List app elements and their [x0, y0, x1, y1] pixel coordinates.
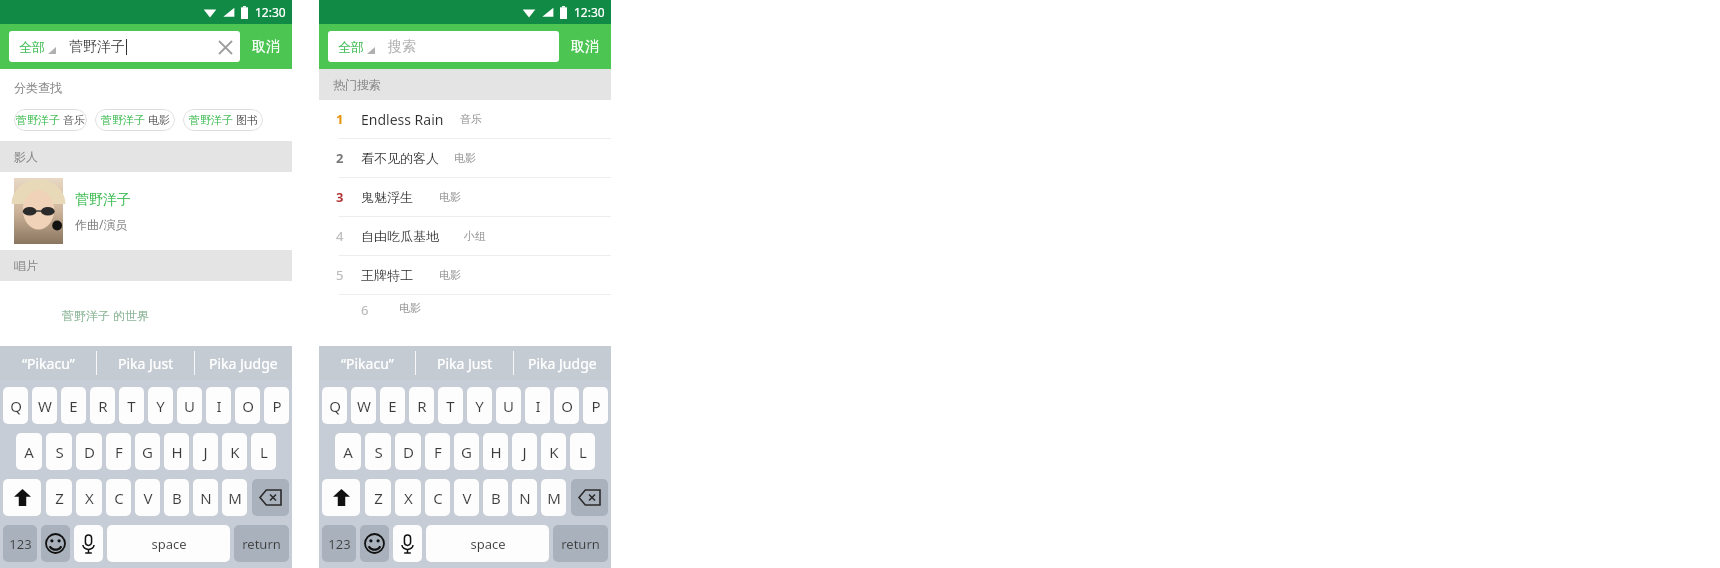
button[interactable]: C [106, 479, 131, 516]
button[interactable]: Shift [3, 479, 41, 516]
button[interactable]: I [525, 387, 550, 424]
button[interactable]: Pika Just [416, 346, 513, 380]
button[interactable]: L [570, 433, 595, 470]
button[interactable]: G [454, 433, 479, 470]
staticText: 123 [328, 535, 351, 553]
button[interactable]: V [135, 479, 160, 516]
button[interactable]: 3 [319, 178, 611, 216]
staticText: 全部 [19, 39, 45, 55]
button[interactable]: D [395, 433, 421, 470]
button[interactable]: J [512, 433, 537, 470]
button[interactable]: “Pikacu” [319, 346, 415, 380]
button[interactable]: 菅野洋子 [95, 109, 175, 131]
button[interactable]: U [496, 387, 521, 424]
button[interactable]: Backspace [571, 479, 608, 516]
button[interactable]: F [425, 433, 450, 470]
button[interactable]: 取消 [559, 24, 611, 69]
button[interactable]: K [222, 433, 247, 470]
button[interactable]: X [395, 479, 421, 516]
button[interactable]: O [235, 387, 260, 424]
button[interactable]: O [554, 387, 579, 424]
button[interactable]: Voice input [74, 525, 103, 562]
button[interactable]: A [16, 433, 42, 470]
button[interactable]: Y [467, 387, 492, 424]
button[interactable]: Pika Judge [514, 346, 611, 380]
button[interactable]: “Pikacu” [0, 346, 96, 380]
staticText: X [85, 488, 94, 508]
button[interactable]: return [553, 525, 608, 562]
button[interactable]: Backspace [252, 479, 289, 516]
button[interactable]: Shift [322, 479, 360, 516]
button[interactable]: N [512, 479, 537, 516]
button[interactable]: M [541, 479, 566, 516]
button[interactable]: Pika Just [97, 346, 194, 380]
button[interactable]: E [380, 387, 405, 424]
button[interactable]: W [351, 387, 376, 424]
staticText: 5 [336, 266, 344, 284]
staticText: Y [475, 396, 484, 416]
button[interactable]: space [426, 525, 549, 562]
button[interactable]: X [76, 479, 102, 516]
button[interactable]: 菅野洋子 [183, 109, 263, 131]
button[interactable]: T [119, 387, 144, 424]
button[interactable]: B [164, 479, 189, 516]
button[interactable]: G [135, 433, 160, 470]
button[interactable]: R [90, 387, 115, 424]
button[interactable]: Z [46, 479, 72, 516]
staticText: “Pikacu” [341, 354, 394, 373]
button[interactable]: P [264, 387, 289, 424]
button[interactable]: 1 [319, 100, 611, 138]
button[interactable]: Q [322, 387, 347, 424]
button[interactable]: Clear [210, 32, 240, 62]
button[interactable]: C [425, 479, 450, 516]
button[interactable]: 菅野洋子 [14, 109, 87, 131]
button[interactable]: P [583, 387, 608, 424]
button[interactable]: 菅野洋子 [0, 172, 292, 250]
button[interactable]: F [106, 433, 131, 470]
button[interactable]: V [454, 479, 479, 516]
button[interactable]: 全部 [9, 31, 240, 62]
button[interactable]: S [46, 433, 72, 470]
button[interactable]: Emoji [41, 525, 70, 562]
button[interactable]: Emoji [360, 525, 389, 562]
button[interactable]: 5 [319, 256, 611, 294]
staticText: Pika Judge [209, 354, 278, 373]
button[interactable]: D [76, 433, 102, 470]
button[interactable]: space [107, 525, 230, 562]
button[interactable]: return [234, 525, 289, 562]
button[interactable]: I [206, 387, 231, 424]
button[interactable]: W [32, 387, 57, 424]
button[interactable]: K [541, 433, 566, 470]
button[interactable]: T [438, 387, 463, 424]
staticText: Y [156, 396, 165, 416]
button[interactable]: H [483, 433, 508, 470]
button[interactable]: 取消 [240, 24, 292, 69]
button[interactable]: 全部 [328, 31, 559, 62]
staticText: J [203, 442, 208, 462]
staticText: H [490, 442, 502, 462]
button[interactable]: 2 [319, 139, 611, 177]
button[interactable]: 123 [3, 525, 37, 562]
button[interactable]: A [335, 433, 361, 470]
button[interactable]: J [193, 433, 218, 470]
staticText: P [591, 396, 601, 416]
staticText: 菅野洋子 [16, 113, 60, 127]
button[interactable]: L [251, 433, 276, 470]
button[interactable]: Z [365, 479, 391, 516]
staticText: 王牌特工 [361, 267, 413, 283]
button[interactable]: Y [148, 387, 173, 424]
button[interactable]: E [61, 387, 86, 424]
button[interactable]: H [164, 433, 189, 470]
button[interactable]: Q [3, 387, 28, 424]
button[interactable]: Pika Judge [195, 346, 292, 380]
button[interactable]: N [193, 479, 218, 516]
button[interactable]: B [483, 479, 508, 516]
button[interactable]: 123 [322, 525, 356, 562]
staticText: B [491, 488, 501, 508]
button[interactable]: U [177, 387, 202, 424]
button[interactable]: 4 [319, 217, 611, 255]
button[interactable]: R [409, 387, 434, 424]
button[interactable]: M [222, 479, 247, 516]
button[interactable]: S [365, 433, 391, 470]
button[interactable]: Voice input [393, 525, 422, 562]
